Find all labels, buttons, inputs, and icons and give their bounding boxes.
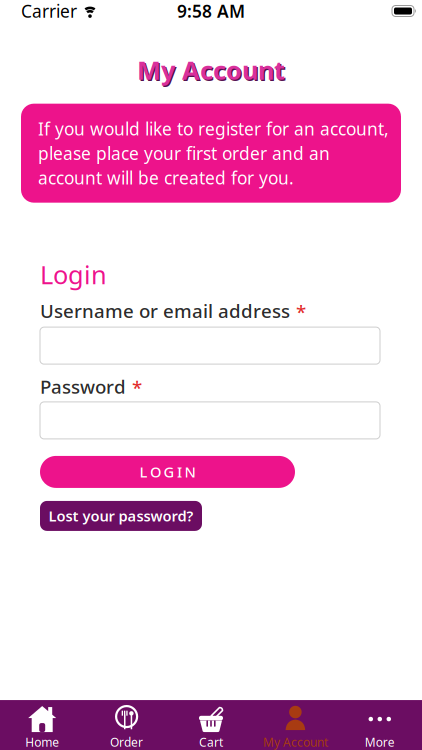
staticText: Home <box>25 734 59 750</box>
button[interactable]: LOGIN <box>40 456 295 488</box>
staticText: Order <box>110 734 143 750</box>
button[interactable]: Cart <box>169 706 253 750</box>
staticText: Login <box>40 258 107 291</box>
staticText: please place your first order and an <box>38 142 330 165</box>
staticText: My Account <box>137 53 285 87</box>
staticText: Username or email address <box>40 298 290 323</box>
button[interactable]: My Account <box>253 706 338 750</box>
staticText: Carrier <box>21 0 77 22</box>
staticText: 9:58 AM <box>177 0 245 22</box>
button[interactable]: Home <box>0 706 84 750</box>
staticText: My Account <box>263 734 328 750</box>
staticText: If you would like to register for an acc… <box>38 117 389 140</box>
button[interactable]: Username or email address <box>40 327 380 364</box>
staticText: My Account <box>138 54 286 88</box>
button[interactable]: Password <box>40 402 380 439</box>
staticText: Lost your password? <box>48 506 193 526</box>
staticText: Cart <box>199 734 223 750</box>
staticText: LOGIN <box>139 462 195 482</box>
staticText: More <box>365 734 395 750</box>
button[interactable]: More <box>338 706 422 750</box>
staticText: * <box>296 299 306 324</box>
staticText: Password <box>40 374 126 399</box>
staticText: account will be created for you. <box>38 166 294 189</box>
button[interactable]: Order <box>84 706 169 750</box>
staticText: * <box>132 375 142 400</box>
button[interactable]: Lost your password? <box>40 501 202 531</box>
